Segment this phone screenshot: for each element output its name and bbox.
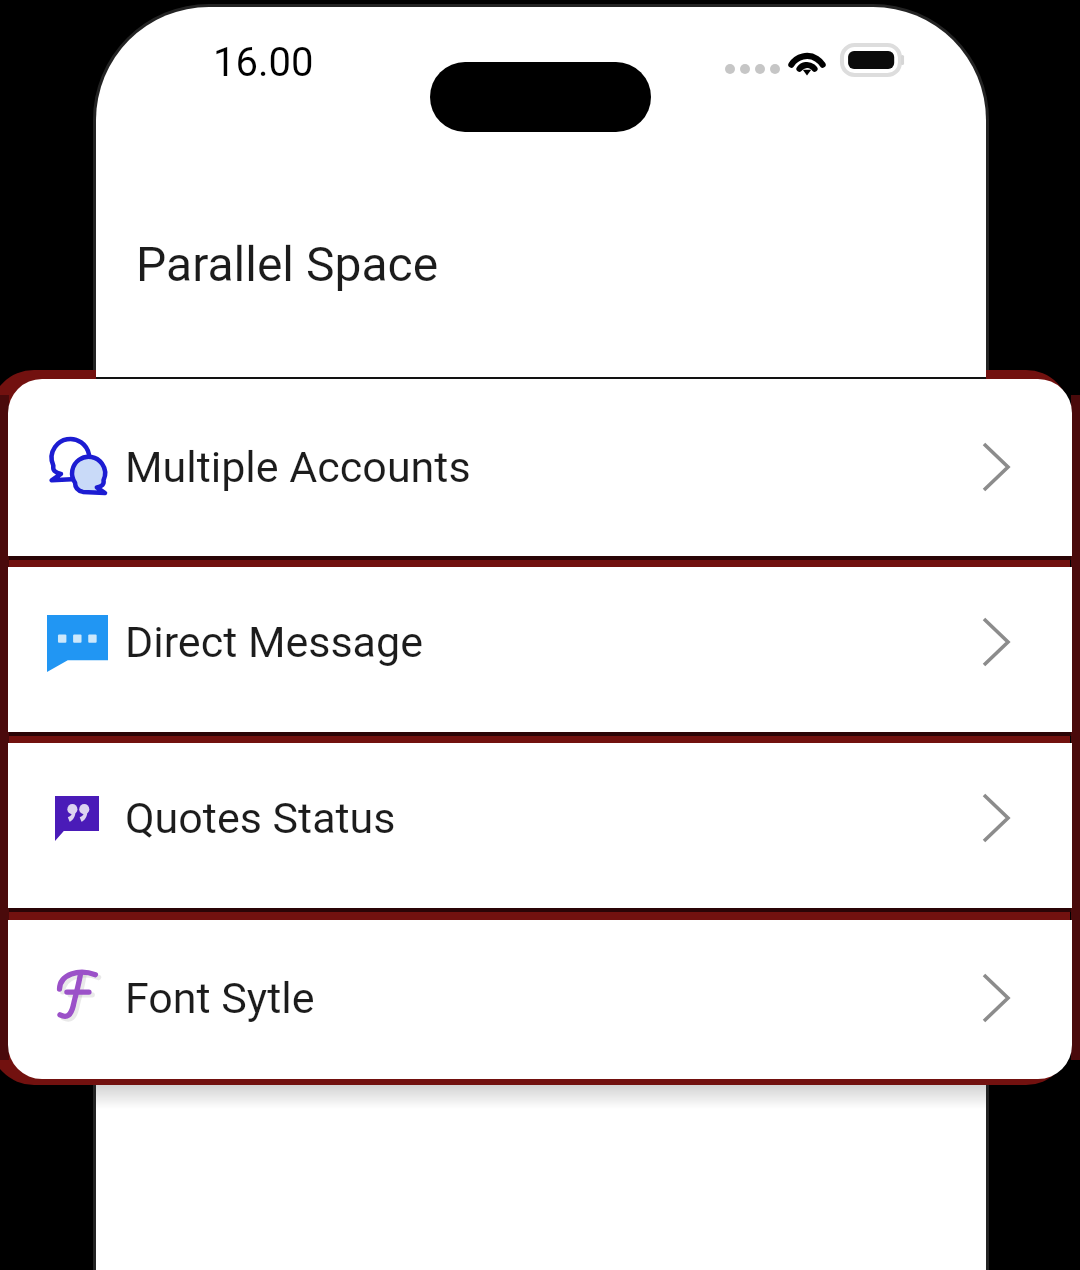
staticText: 16.00 [213,39,314,86]
staticText: Font Sytle [125,973,315,1023]
button[interactable]: Font Sytle [8,920,1072,1079]
button[interactable]: Direct Message [8,567,1072,732]
staticText: Multiple Accounts [125,442,471,492]
button[interactable]: Multiple Accounts [8,379,1072,556]
staticText: Quotes Status [125,793,396,843]
button[interactable]: Quotes Status [8,743,1072,908]
staticText: Parallel Space [136,236,439,292]
staticText: Direct Message [125,617,423,667]
other: Wi-Fi [787,45,827,75]
other: Battery [842,45,900,75]
other: Signal strength [725,64,773,74]
